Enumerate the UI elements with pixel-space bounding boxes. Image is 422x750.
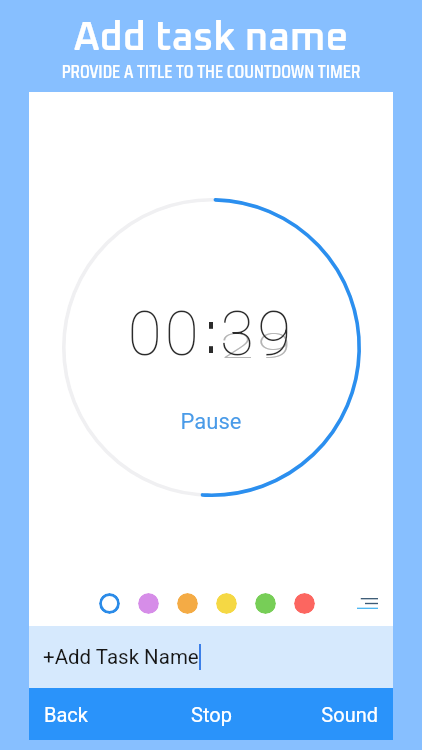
button[interactable] [255, 593, 276, 614]
button[interactable]: +Add Task Name [29, 626, 393, 688]
staticText: PROVIDE A TITLE TO THE COUNTDOWN TIMER [0, 56, 422, 86]
button[interactable]: More options [349, 585, 385, 621]
button[interactable]: Back [29, 688, 151, 740]
staticText: Pause [171, 409, 251, 435]
staticText: Add task name [0, 19, 422, 59]
button[interactable] [294, 593, 315, 614]
staticText: Sound [287, 703, 378, 726]
staticText: 00 39 [29, 297, 393, 370]
button[interactable]: Stop [151, 688, 272, 740]
staticText: 00 29 [29, 325, 393, 366]
staticText: Back [44, 703, 136, 726]
button[interactable] [99, 593, 120, 614]
button[interactable]: Sound [272, 688, 393, 740]
button[interactable] [138, 593, 159, 614]
button[interactable] [177, 593, 198, 614]
button[interactable] [216, 593, 237, 614]
button[interactable]: Pause [171, 406, 251, 438]
staticText: +Add Task Name [43, 645, 199, 669]
staticText: Stop [166, 703, 257, 726]
